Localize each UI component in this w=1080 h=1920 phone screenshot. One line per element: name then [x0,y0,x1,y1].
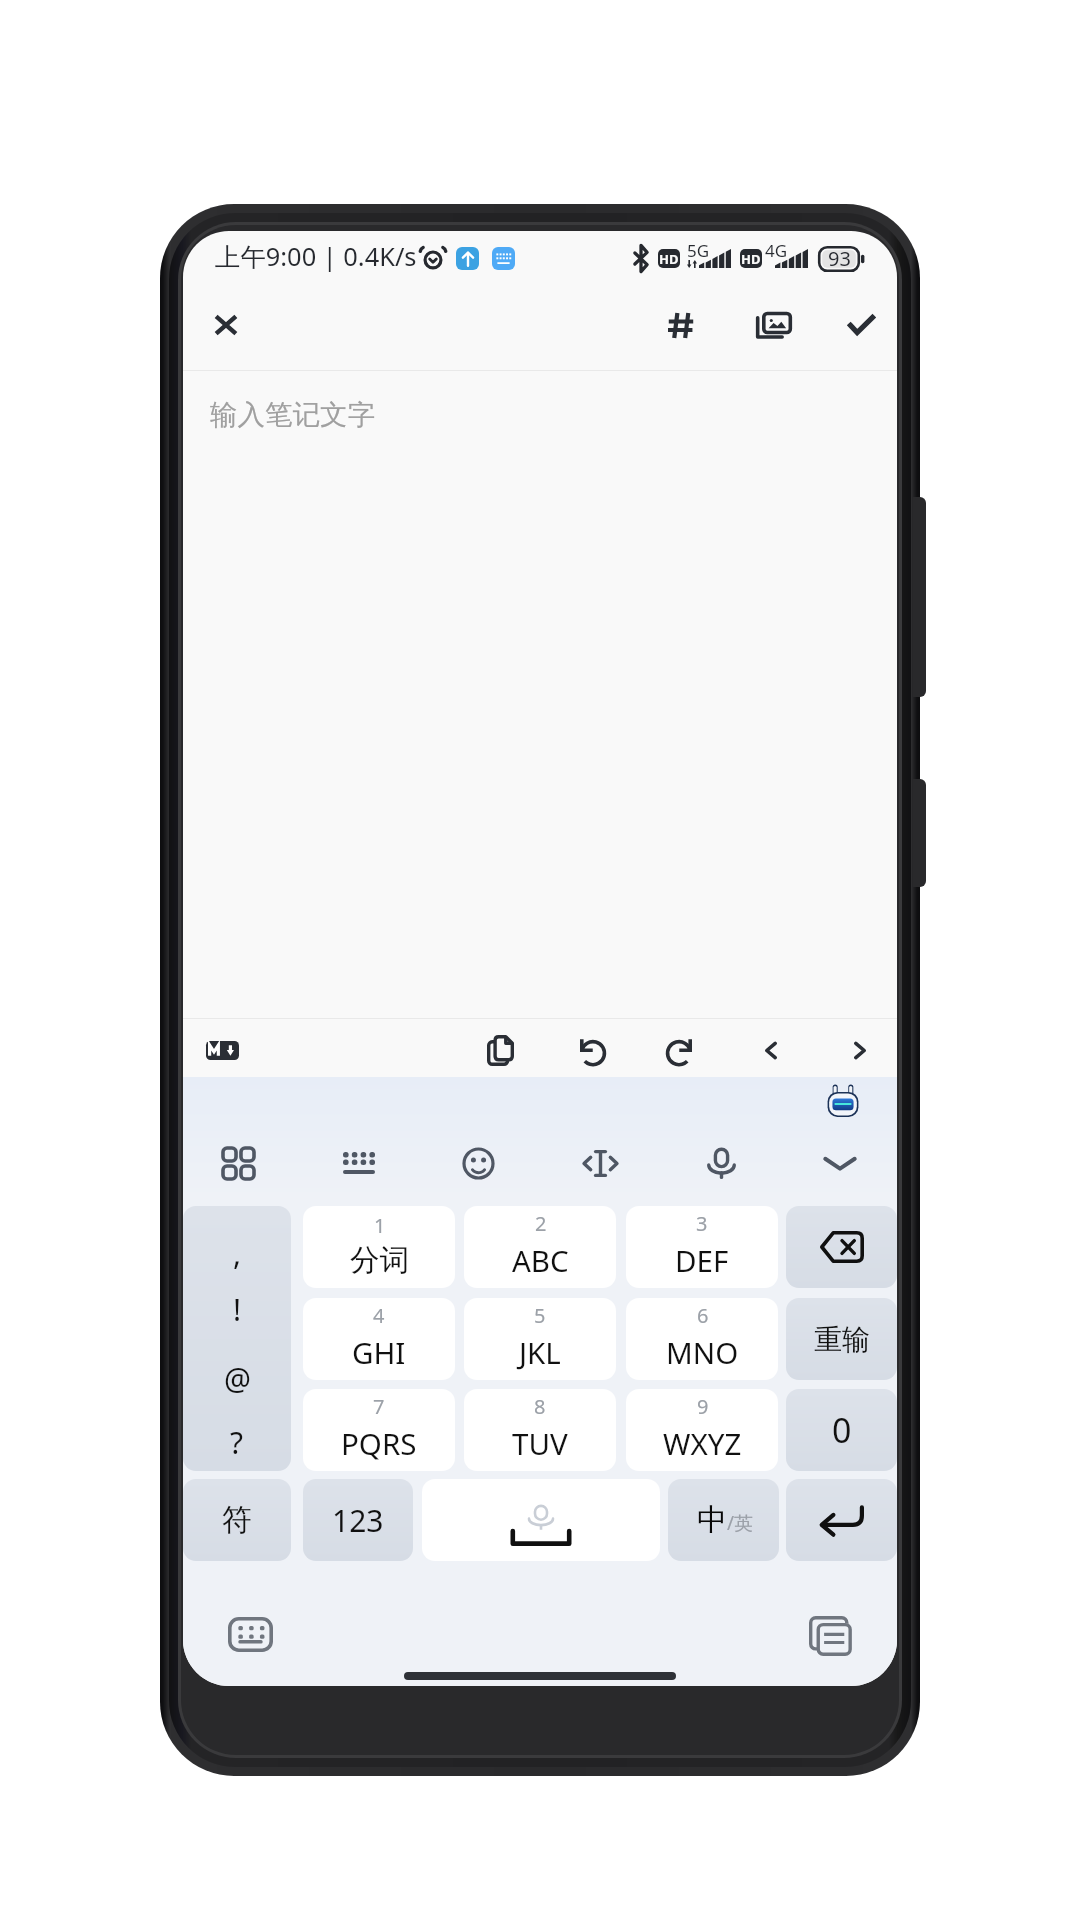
button[interactable]: Voice input [692,1134,750,1192]
staticText: ! [233,1289,242,1330]
staticText: 分词 [350,1242,409,1279]
button[interactable]: Space [422,1479,660,1561]
staticText: 符 [222,1501,252,1539]
button[interactable]: Close [195,294,257,356]
button[interactable]: Undo [562,1021,620,1079]
staticText: 6 [697,1302,709,1329]
staticText: 2 [535,1210,547,1237]
staticText: 1 [374,1212,386,1239]
button[interactable]: Switch input method [221,1605,279,1663]
staticText: 93 [828,245,851,272]
button[interactable]: Tag [649,293,713,357]
staticText: PQRS [341,1423,417,1463]
button[interactable]: DEF [626,1206,778,1288]
staticText: DEF [675,1240,729,1280]
button[interactable]: Clipboard [801,1606,859,1664]
button[interactable]: Emoji [449,1134,507,1192]
staticText: 4G [765,239,788,262]
staticText: ? [230,1422,244,1463]
staticText: 0 [832,1407,852,1453]
staticText: /英 [727,1510,754,1536]
button[interactable]: Insert image [742,293,806,357]
button[interactable]: Hide keyboard [811,1134,869,1192]
staticText: 上午9:00 | 0.4K/s [215,239,417,274]
button[interactable]: MNO [626,1298,778,1380]
button[interactable]: 0 [786,1389,897,1471]
staticText: GHI [352,1332,406,1372]
button[interactable]: Numbers [303,1479,413,1561]
button[interactable]: JKL [464,1298,616,1380]
staticText: WXYZ [663,1423,742,1463]
staticText: 5 [534,1302,546,1329]
staticText: 123 [332,1500,384,1541]
button[interactable]: GHI [303,1298,455,1380]
button[interactable]: 分词 [303,1206,455,1288]
button[interactable]: AI assistant [817,1076,869,1128]
staticText: 4 [373,1302,385,1329]
button[interactable]: Punctuation [183,1206,291,1471]
staticText: MNO [666,1332,739,1372]
staticText: HD [659,250,679,268]
button[interactable]: Copy [471,1021,529,1079]
staticText: 7 [373,1393,385,1420]
button[interactable]: Next [833,1023,887,1077]
button[interactable]: Backspace [786,1206,897,1288]
staticText: JKL [519,1332,561,1372]
button[interactable]: Previous [744,1023,798,1077]
button[interactable]: Edit text [571,1134,629,1192]
button[interactable]: Re-enter [786,1298,897,1380]
button[interactable]: Done [829,293,893,357]
button[interactable]: Symbols [183,1479,291,1561]
button[interactable]: WXYZ [626,1389,778,1471]
staticText: 9 [697,1393,709,1420]
button[interactable]: Enter [786,1479,897,1561]
staticText: TUV [512,1423,568,1463]
staticText: HD [741,250,761,268]
button[interactable]: Apps [209,1134,267,1192]
button[interactable]: Chinese English [668,1479,779,1561]
staticText: @ [224,1358,251,1399]
staticText: 输入笔记文字 [210,398,375,433]
button[interactable]: TUV [464,1389,616,1471]
staticText: 3 [696,1210,708,1237]
staticText: 5G [687,239,710,262]
button[interactable]: Redo [652,1021,710,1079]
staticText: 重输 [814,1322,870,1357]
button[interactable]: PQRS [303,1389,455,1471]
staticText: 中 [697,1501,727,1539]
button[interactable]: Markdown [195,1023,249,1077]
button[interactable]: Keyboard [330,1134,388,1192]
staticText: , [233,1233,242,1274]
staticText: ABC [512,1240,569,1280]
button[interactable]: ABC [464,1206,616,1288]
staticText: 8 [534,1393,546,1420]
